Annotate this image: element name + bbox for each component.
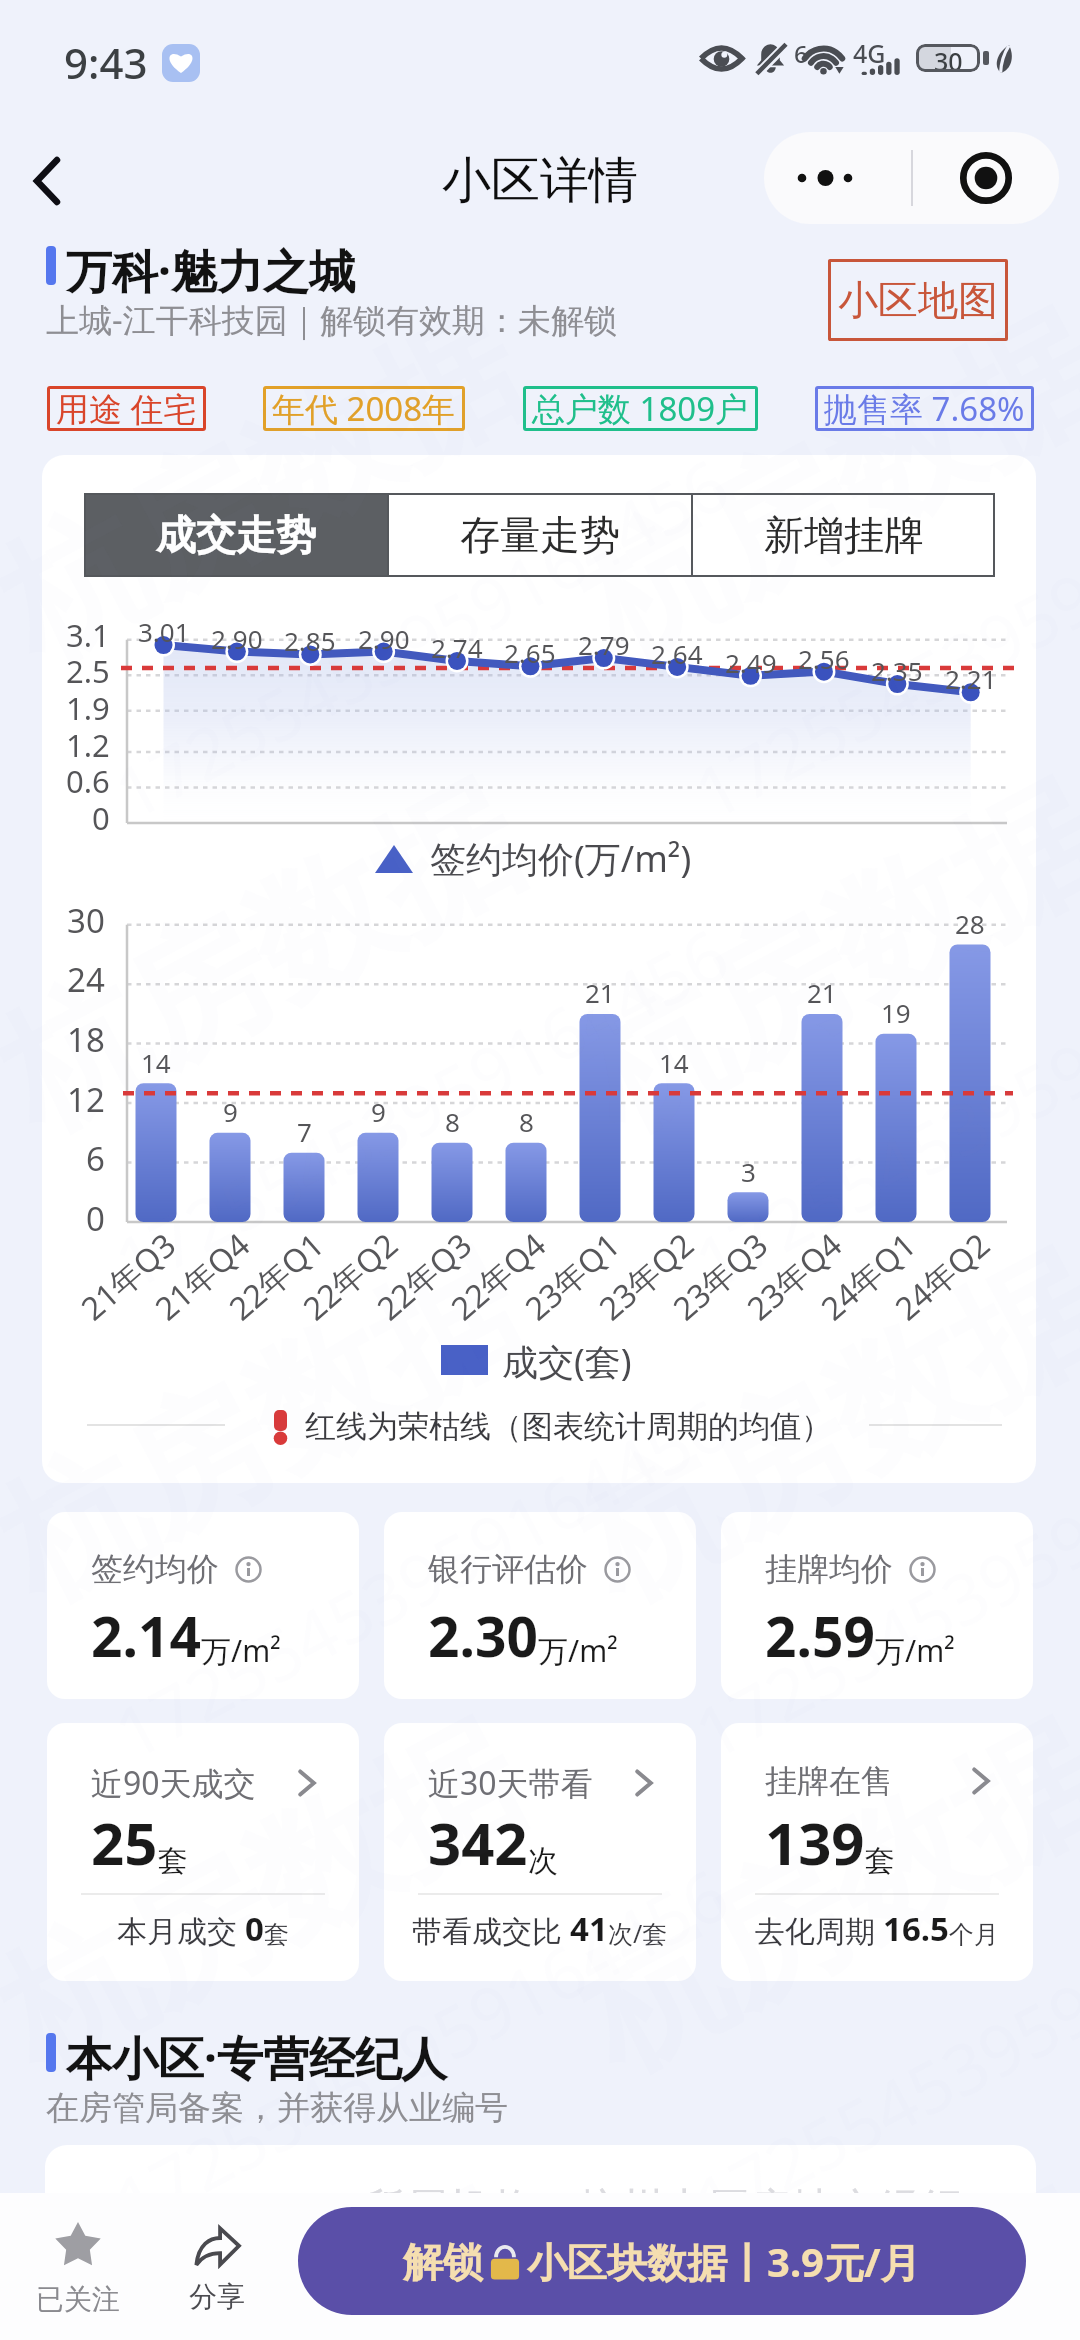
staticText: 0 xyxy=(86,1196,105,1241)
staticText: 解锁 xyxy=(403,2237,483,2287)
staticText: 21年Q3 xyxy=(71,1223,185,1330)
button[interactable]: 挂牌在售 xyxy=(721,1723,1033,1981)
staticText: 2.90 xyxy=(211,621,263,656)
staticText: 杭房数据 xyxy=(551,2159,1080,2340)
button[interactable]: 挂牌均价 xyxy=(721,1512,1033,1699)
staticText: 2.74 xyxy=(431,630,483,665)
button[interactable]: 近90天成交 xyxy=(47,1723,359,1981)
staticText: 带看成交比 xyxy=(412,1910,570,1951)
staticText: 17255453959164456 xyxy=(678,1376,1080,1779)
staticText: 套 xyxy=(158,1842,188,1880)
staticText: 2.90 xyxy=(358,621,410,656)
button[interactable]: 成交走势 xyxy=(84,493,387,577)
staticText: 2.65 xyxy=(504,635,556,670)
staticText: 17255453959164456 xyxy=(98,436,743,839)
staticText: 4G xyxy=(853,36,886,70)
staticText: 41 xyxy=(570,1906,608,1951)
button[interactable]: 近30天带看 xyxy=(384,1723,696,1981)
staticText: 杭房数据 xyxy=(0,1219,549,1637)
staticText: 年代 2008年 xyxy=(272,386,456,431)
staticText: 分享 xyxy=(189,2279,245,2314)
staticText: 个月 xyxy=(949,1919,999,1950)
button[interactable]: 分享 xyxy=(157,2228,277,2314)
staticText: 杭房数据 xyxy=(551,279,1080,697)
staticText: 小区详情 xyxy=(442,150,638,212)
staticText: 签约均价(万/m²) xyxy=(430,834,692,883)
button[interactable]: 返回 xyxy=(16,122,100,240)
staticText: 2.35 xyxy=(871,653,923,688)
staticText: 3.01 xyxy=(138,614,190,649)
staticText: 杭房数据 xyxy=(0,749,549,1167)
staticText: 22年Q2 xyxy=(293,1223,407,1330)
staticText: 万/m² xyxy=(875,1630,955,1671)
staticText: 17255453959164456 xyxy=(678,1846,1080,2249)
staticText: 342 xyxy=(428,1803,528,1882)
staticText: 抛售率 7.68% xyxy=(824,386,1025,431)
staticText: 2.85 xyxy=(284,623,336,658)
staticText: 25 xyxy=(91,1803,158,1882)
staticText: 3 xyxy=(741,1154,756,1189)
staticText: 7 xyxy=(297,1114,312,1149)
staticText: 12 xyxy=(67,1077,105,1122)
staticText: 挂牌在售 xyxy=(765,1761,893,1801)
staticText: 24 xyxy=(67,957,105,1002)
staticText: 成交走势 xyxy=(156,510,316,560)
staticText: 杭房数据 xyxy=(551,749,1080,1167)
staticText: 去化周期 xyxy=(755,1910,883,1951)
staticText: 17255453959164456 xyxy=(98,906,743,1309)
staticText: 14 xyxy=(659,1045,689,1080)
staticText: 30 xyxy=(934,44,963,72)
button[interactable]: 新增挂牌 xyxy=(693,493,995,577)
staticText: 近30天带看 xyxy=(428,1761,593,1805)
staticText: 3.1 xyxy=(66,614,110,656)
staticText: 2.5 xyxy=(66,650,110,692)
button[interactable]: 已关注 xyxy=(18,2222,138,2317)
staticText: 1.9 xyxy=(66,687,110,729)
staticText: 成交(套) xyxy=(502,1337,632,1386)
staticText: 22年Q4 xyxy=(441,1223,555,1330)
button[interactable]: 关闭 xyxy=(913,132,1059,224)
staticText: 本小区·专营经纪人 xyxy=(66,2026,447,2089)
staticText: 2.79 xyxy=(578,627,630,662)
staticText: 红线为荣枯线（图表统计周期的均值） xyxy=(305,1407,832,1446)
staticText: 24年Q1 xyxy=(811,1223,925,1330)
staticText: 已关注 xyxy=(36,2282,120,2317)
staticText: 22年Q1 xyxy=(219,1223,333,1330)
staticText: 8 xyxy=(445,1104,460,1139)
staticText: 次 xyxy=(528,1842,558,1880)
button[interactable]: 更多 xyxy=(764,132,911,224)
staticText: 杭房数据 xyxy=(551,1219,1080,1637)
staticText: 21 xyxy=(585,975,615,1010)
staticText: 上城-江干科技园｜解锁有效期：未解锁 xyxy=(46,297,617,342)
staticText: 8 xyxy=(519,1104,534,1139)
button[interactable]: 存量走势 xyxy=(389,493,691,577)
staticText: 本月成交 xyxy=(117,1910,245,1951)
button[interactable]: 小区地图 xyxy=(828,259,1008,341)
staticText: 19 xyxy=(881,995,911,1030)
staticText: 17255453959164456 xyxy=(98,1376,743,1779)
button[interactable]: 签约均价 xyxy=(47,1512,359,1699)
staticText: 2.30 xyxy=(428,1598,538,1673)
staticText: 新增挂牌 xyxy=(764,510,924,560)
staticText: 2.14 xyxy=(91,1598,201,1673)
staticText: 18 xyxy=(67,1017,105,1062)
button[interactable]: 银行评估价 xyxy=(384,1512,696,1699)
staticText: 万/m² xyxy=(201,1630,281,1671)
staticText: 9:43 xyxy=(64,34,148,91)
staticText: 套 xyxy=(865,1842,895,1880)
staticText: 28 xyxy=(955,906,985,941)
staticText: 23年Q2 xyxy=(589,1223,703,1330)
staticText: 杭房数据 xyxy=(551,1689,1080,2107)
staticText: 银行评估价 xyxy=(428,1549,588,1589)
staticText: 14 xyxy=(141,1045,171,1080)
staticText: 总户数 1809户 xyxy=(532,386,749,431)
staticText: 139 xyxy=(765,1803,865,1882)
staticText: 近90天成交 xyxy=(91,1761,256,1805)
button[interactable]: 解锁 xyxy=(298,2207,1026,2315)
staticText: 杭房数据 xyxy=(0,1689,549,2107)
staticText: 9 xyxy=(223,1094,238,1129)
staticText: 杭房数据 xyxy=(0,2159,549,2340)
staticText: 用途 住宅 xyxy=(56,386,197,431)
staticText: 万科·魅力之城 xyxy=(66,239,355,302)
staticText: 小区地图 xyxy=(838,275,998,325)
